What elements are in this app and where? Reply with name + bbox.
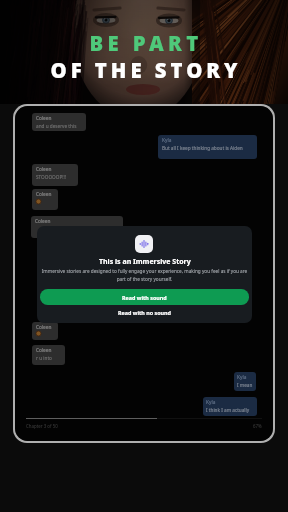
staticText: Read with sound xyxy=(122,294,167,301)
staticText: Kyla xyxy=(206,399,216,405)
button[interactable]: Read with sound xyxy=(40,289,249,305)
button[interactable]: Coleen xyxy=(32,322,58,340)
button[interactable]: Coleen xyxy=(32,113,86,131)
button[interactable]: Kyla xyxy=(158,135,257,159)
button[interactable]: Coleen xyxy=(31,216,123,238)
staticText: 67% xyxy=(253,423,262,429)
button[interactable]: Kyla xyxy=(234,372,256,391)
staticText: r u into him xyxy=(36,355,61,361)
button[interactable]: Read with no sound xyxy=(110,306,180,319)
staticText: Coleen xyxy=(35,218,51,224)
staticText: Chapter 3 of 50 xyxy=(26,423,58,429)
button[interactable]: Coleen xyxy=(32,164,78,186)
staticText: Kyla xyxy=(237,374,247,380)
staticText: STOOOOOP!!! xyxy=(36,174,67,180)
staticText: Coleen xyxy=(36,115,52,121)
staticText: Read with no sound xyxy=(118,309,172,316)
staticText: I think I am actually xyxy=(206,407,250,413)
staticText: But all I keep thinking about is Aiden xyxy=(162,145,243,151)
staticText: BE PART xyxy=(89,29,203,57)
staticText: I mean xyxy=(237,382,253,388)
staticText: Kyla xyxy=(162,137,172,143)
staticText: Immersive stories are designed to fully … xyxy=(39,268,250,282)
staticText: OF THE STORY xyxy=(50,56,242,84)
staticText: Coleen xyxy=(36,324,52,330)
staticText: Coleen xyxy=(36,166,52,172)
staticText: Coleen xyxy=(36,191,52,197)
staticText: Coleen xyxy=(36,347,52,353)
staticText: This is an Immersive Story xyxy=(99,257,191,267)
button[interactable]: Coleen xyxy=(32,345,65,365)
button[interactable]: Kyla xyxy=(203,397,257,416)
staticText: and u deserve this xyxy=(36,123,77,129)
button[interactable]: Coleen xyxy=(32,189,58,210)
